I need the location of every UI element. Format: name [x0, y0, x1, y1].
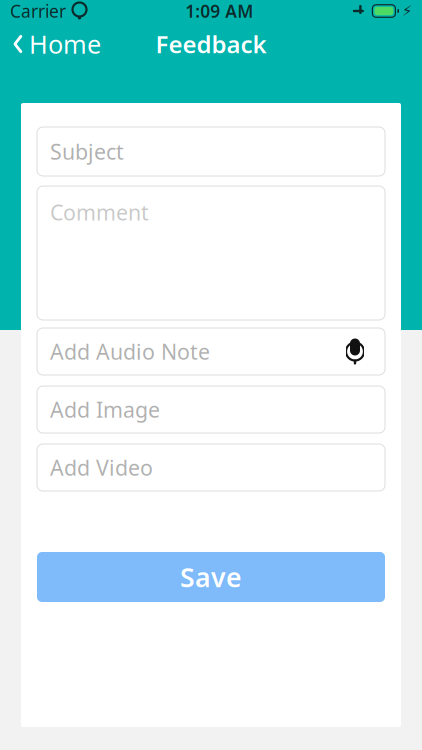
staticText: Carrier	[10, 0, 66, 22]
staticText: Add Image	[50, 395, 160, 424]
staticText: 1:09 AM	[185, 0, 253, 22]
button[interactable]: Save	[37, 552, 385, 602]
staticText: Feedback	[155, 28, 266, 60]
button[interactable]: Comment	[37, 186, 385, 320]
button[interactable]: Add Image	[37, 386, 385, 433]
button[interactable]: Add Video	[37, 444, 385, 491]
button[interactable]: Add Audio Note	[37, 328, 385, 375]
staticText: Subject	[50, 137, 124, 166]
staticText: Add Video	[50, 453, 153, 482]
staticText: ⚡︎	[402, 3, 412, 19]
button[interactable]: Home	[0, 22, 113, 66]
staticText: Comment	[50, 198, 149, 226]
staticText: Save	[180, 559, 242, 595]
staticText: Home	[29, 27, 101, 61]
staticText: Add Audio Note	[50, 337, 210, 366]
button[interactable]: Subject	[37, 127, 385, 176]
